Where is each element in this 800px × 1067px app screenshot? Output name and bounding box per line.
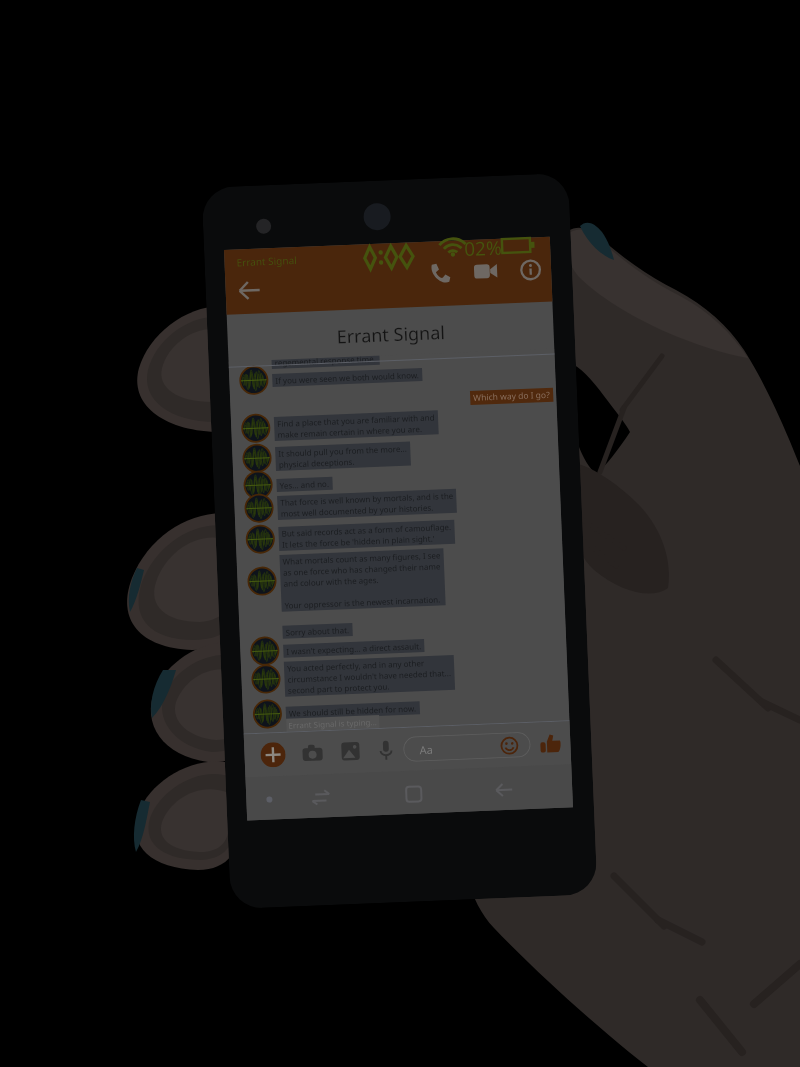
button[interactable]: I wasn't expecting... a direct assault. bbox=[286, 640, 421, 657]
staticText: What mortals count as many figures, I se… bbox=[282, 549, 441, 567]
staticText: Aa bbox=[419, 742, 434, 757]
button[interactable]: Video call bbox=[470, 257, 500, 286]
staticText: It should pull you from the more... bbox=[278, 443, 407, 459]
staticText: That force is well known by mortals, and… bbox=[280, 490, 453, 508]
button[interactable]: Aa bbox=[403, 732, 531, 762]
button[interactable]: Recent apps bbox=[306, 783, 335, 812]
staticText: physical deceptions. bbox=[279, 456, 355, 470]
staticText: circumstance I wouldn't have needed that… bbox=[287, 667, 452, 685]
button[interactable]: Sorry about that. bbox=[285, 624, 350, 638]
staticText: most well documented by your histories. bbox=[281, 502, 434, 519]
button[interactable]: Camera bbox=[298, 738, 327, 767]
button[interactable]: Home bbox=[399, 779, 428, 808]
button[interactable]: What mortals count as many figures, I se… bbox=[282, 549, 443, 611]
button[interactable]: Call bbox=[426, 259, 455, 288]
button[interactable]: Send a like bbox=[536, 728, 565, 758]
button[interactable]: If you were seen we both would know. bbox=[275, 369, 419, 386]
staticText: But said records act as a form of camouf… bbox=[281, 521, 452, 539]
staticText: Your oppressor is the newest incarnation… bbox=[284, 593, 441, 611]
staticText: 02% bbox=[464, 235, 503, 262]
button[interactable]: Gallery bbox=[336, 737, 365, 766]
staticText: regemental response time. bbox=[274, 356, 377, 368]
button[interactable]: Conversation information bbox=[515, 255, 545, 284]
button[interactable]: Open actions bbox=[260, 742, 286, 768]
button[interactable]: That force is well known by mortals, and… bbox=[280, 490, 454, 519]
button[interactable]: It should pull you from the more... bbox=[278, 443, 408, 470]
staticText: second part to protect you. bbox=[288, 680, 390, 696]
staticText: as one force who has changed their name bbox=[283, 560, 441, 578]
button[interactable]: regemental response time. bbox=[274, 356, 377, 368]
button[interactable]: Find a place that you are familiar with … bbox=[277, 411, 436, 440]
staticText: Errant Signal is typing... bbox=[288, 716, 378, 731]
button[interactable]: But said records act as a form of camouf… bbox=[281, 521, 452, 550]
button[interactable]: Yes... and no. bbox=[279, 478, 330, 491]
button[interactable]: Voice message bbox=[371, 735, 400, 764]
button[interactable]: Which way do I go? bbox=[473, 389, 550, 404]
staticText: We should still be hidden for now. bbox=[289, 702, 417, 719]
staticText: Sorry about that. bbox=[285, 624, 350, 638]
staticText: Which way do I go? bbox=[473, 389, 550, 404]
button[interactable]: Back bbox=[233, 274, 264, 305]
staticText: make remain certain in where you are. bbox=[277, 423, 423, 440]
staticText: and colour with the ages. bbox=[283, 574, 379, 589]
button[interactable]: You acted perfectly, and in any other bbox=[287, 656, 452, 696]
staticText: I wasn't expecting... a direct assault. bbox=[286, 640, 421, 657]
staticText: If you were seen we both would know. bbox=[275, 369, 419, 386]
staticText: You acted perfectly, and in any other bbox=[287, 657, 425, 674]
staticText: Find a place that you are familiar with … bbox=[277, 411, 435, 429]
button[interactable]: We should still be hidden for now. bbox=[289, 702, 417, 719]
staticText: Errant Signal bbox=[236, 253, 298, 269]
button[interactable]: Back bbox=[489, 775, 518, 804]
staticText: Errant Signal bbox=[336, 320, 446, 349]
staticText: Yes... and no. bbox=[279, 478, 330, 491]
staticText: It lets the force be 'hidden in plain si… bbox=[282, 533, 435, 550]
